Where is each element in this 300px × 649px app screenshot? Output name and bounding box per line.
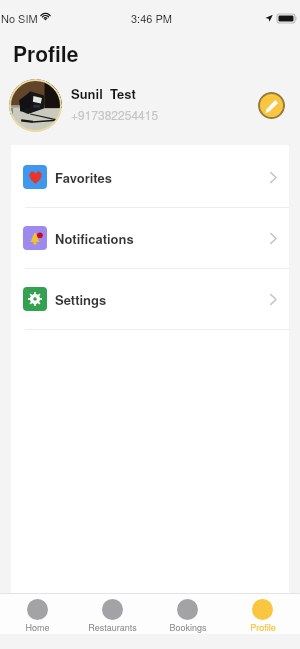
staticText: +917382254415: [71, 106, 159, 123]
button[interactable]: Bookings: [150, 594, 225, 634]
button[interactable]: Notifications: [11, 208, 289, 268]
button[interactable]: Restaurants: [75, 594, 150, 634]
staticText: Profile: [13, 38, 79, 68]
button[interactable]: Settings: [11, 269, 289, 329]
staticText: No SIM: [1, 10, 38, 26]
staticText: Profile: [250, 621, 276, 634]
staticText: Notifications: [55, 229, 134, 248]
button[interactable]: Edit profile: [258, 92, 285, 119]
button[interactable]: Favorites: [11, 147, 289, 207]
staticText: 3:46 PM: [131, 10, 172, 26]
staticText: Restaurants: [88, 621, 137, 634]
staticText: Home: [25, 621, 50, 634]
staticText: Favorites: [55, 168, 113, 187]
staticText: Sunil Test: [71, 84, 136, 103]
staticText: Bookings: [169, 621, 207, 634]
button[interactable]: Profile: [225, 594, 300, 634]
staticText: Settings: [55, 290, 107, 309]
button[interactable]: Home: [0, 594, 75, 634]
